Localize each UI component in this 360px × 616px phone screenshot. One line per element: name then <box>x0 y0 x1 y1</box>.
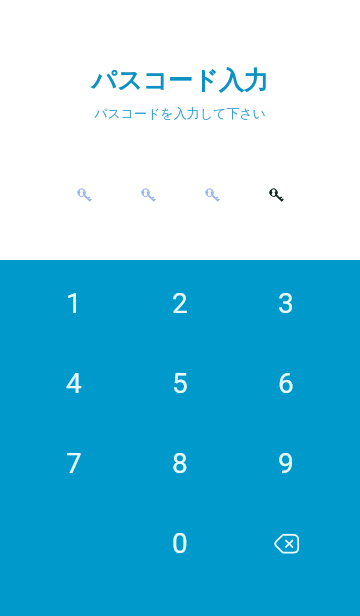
staticText: 7 <box>66 447 82 480</box>
button[interactable]: 4 <box>21 343 127 423</box>
button[interactable]: 7 <box>21 423 127 503</box>
staticText: 4 <box>66 367 82 400</box>
staticText: 2 <box>172 287 188 320</box>
button[interactable]: 3 <box>233 263 339 343</box>
staticText: 0 <box>172 527 188 560</box>
button[interactable]: 1 <box>21 263 127 343</box>
button[interactable]: 9 <box>233 423 339 503</box>
button[interactable]: 6 <box>233 343 339 423</box>
staticText: 1 <box>66 287 82 320</box>
button[interactable]: 5 <box>127 343 233 423</box>
staticText: 5 <box>172 367 188 400</box>
staticText: パスコードを入力して下さい <box>94 105 266 121</box>
staticText: パスコード入力 <box>91 65 269 96</box>
other: Delete <box>266 523 306 563</box>
button[interactable]: 8 <box>127 423 233 503</box>
staticText: 6 <box>278 367 294 400</box>
staticText: 9 <box>278 447 294 480</box>
button[interactable]: Delete <box>233 503 339 583</box>
button[interactable]: 0 <box>127 503 233 583</box>
staticText: 3 <box>278 287 294 320</box>
button[interactable]: 2 <box>127 263 233 343</box>
staticText: 8 <box>172 447 188 480</box>
